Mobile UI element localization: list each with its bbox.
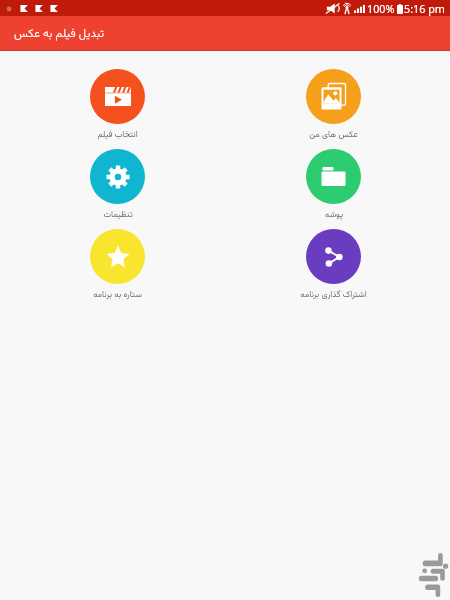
button[interactable]: My photos xyxy=(283,69,383,146)
staticText: 5:16 pm xyxy=(404,1,445,16)
button[interactable]: Share app xyxy=(283,229,383,306)
other: My photos xyxy=(321,83,346,110)
staticText: انتخاب فیلم xyxy=(97,128,138,141)
other: Rate app xyxy=(106,246,130,268)
staticText: اشتراک گذاری برنامه xyxy=(300,288,367,301)
button[interactable]: Settings xyxy=(67,149,167,226)
other: Share app xyxy=(323,246,344,268)
button[interactable]: Rate app xyxy=(67,229,167,306)
button[interactable]: Choose video xyxy=(67,69,167,146)
staticText: ستاره به برنامه xyxy=(93,288,142,301)
other: Folder xyxy=(321,167,346,186)
staticText: تبدیل فیلم به عکس xyxy=(14,25,104,43)
staticText: عکس های من xyxy=(309,128,358,141)
other: Choose video xyxy=(105,87,131,106)
staticText: تنظیمات xyxy=(103,208,133,221)
staticText: پوشه xyxy=(325,208,343,221)
other: Settings xyxy=(106,165,130,189)
button[interactable]: Folder xyxy=(283,149,383,226)
staticText: 100% xyxy=(367,1,395,16)
